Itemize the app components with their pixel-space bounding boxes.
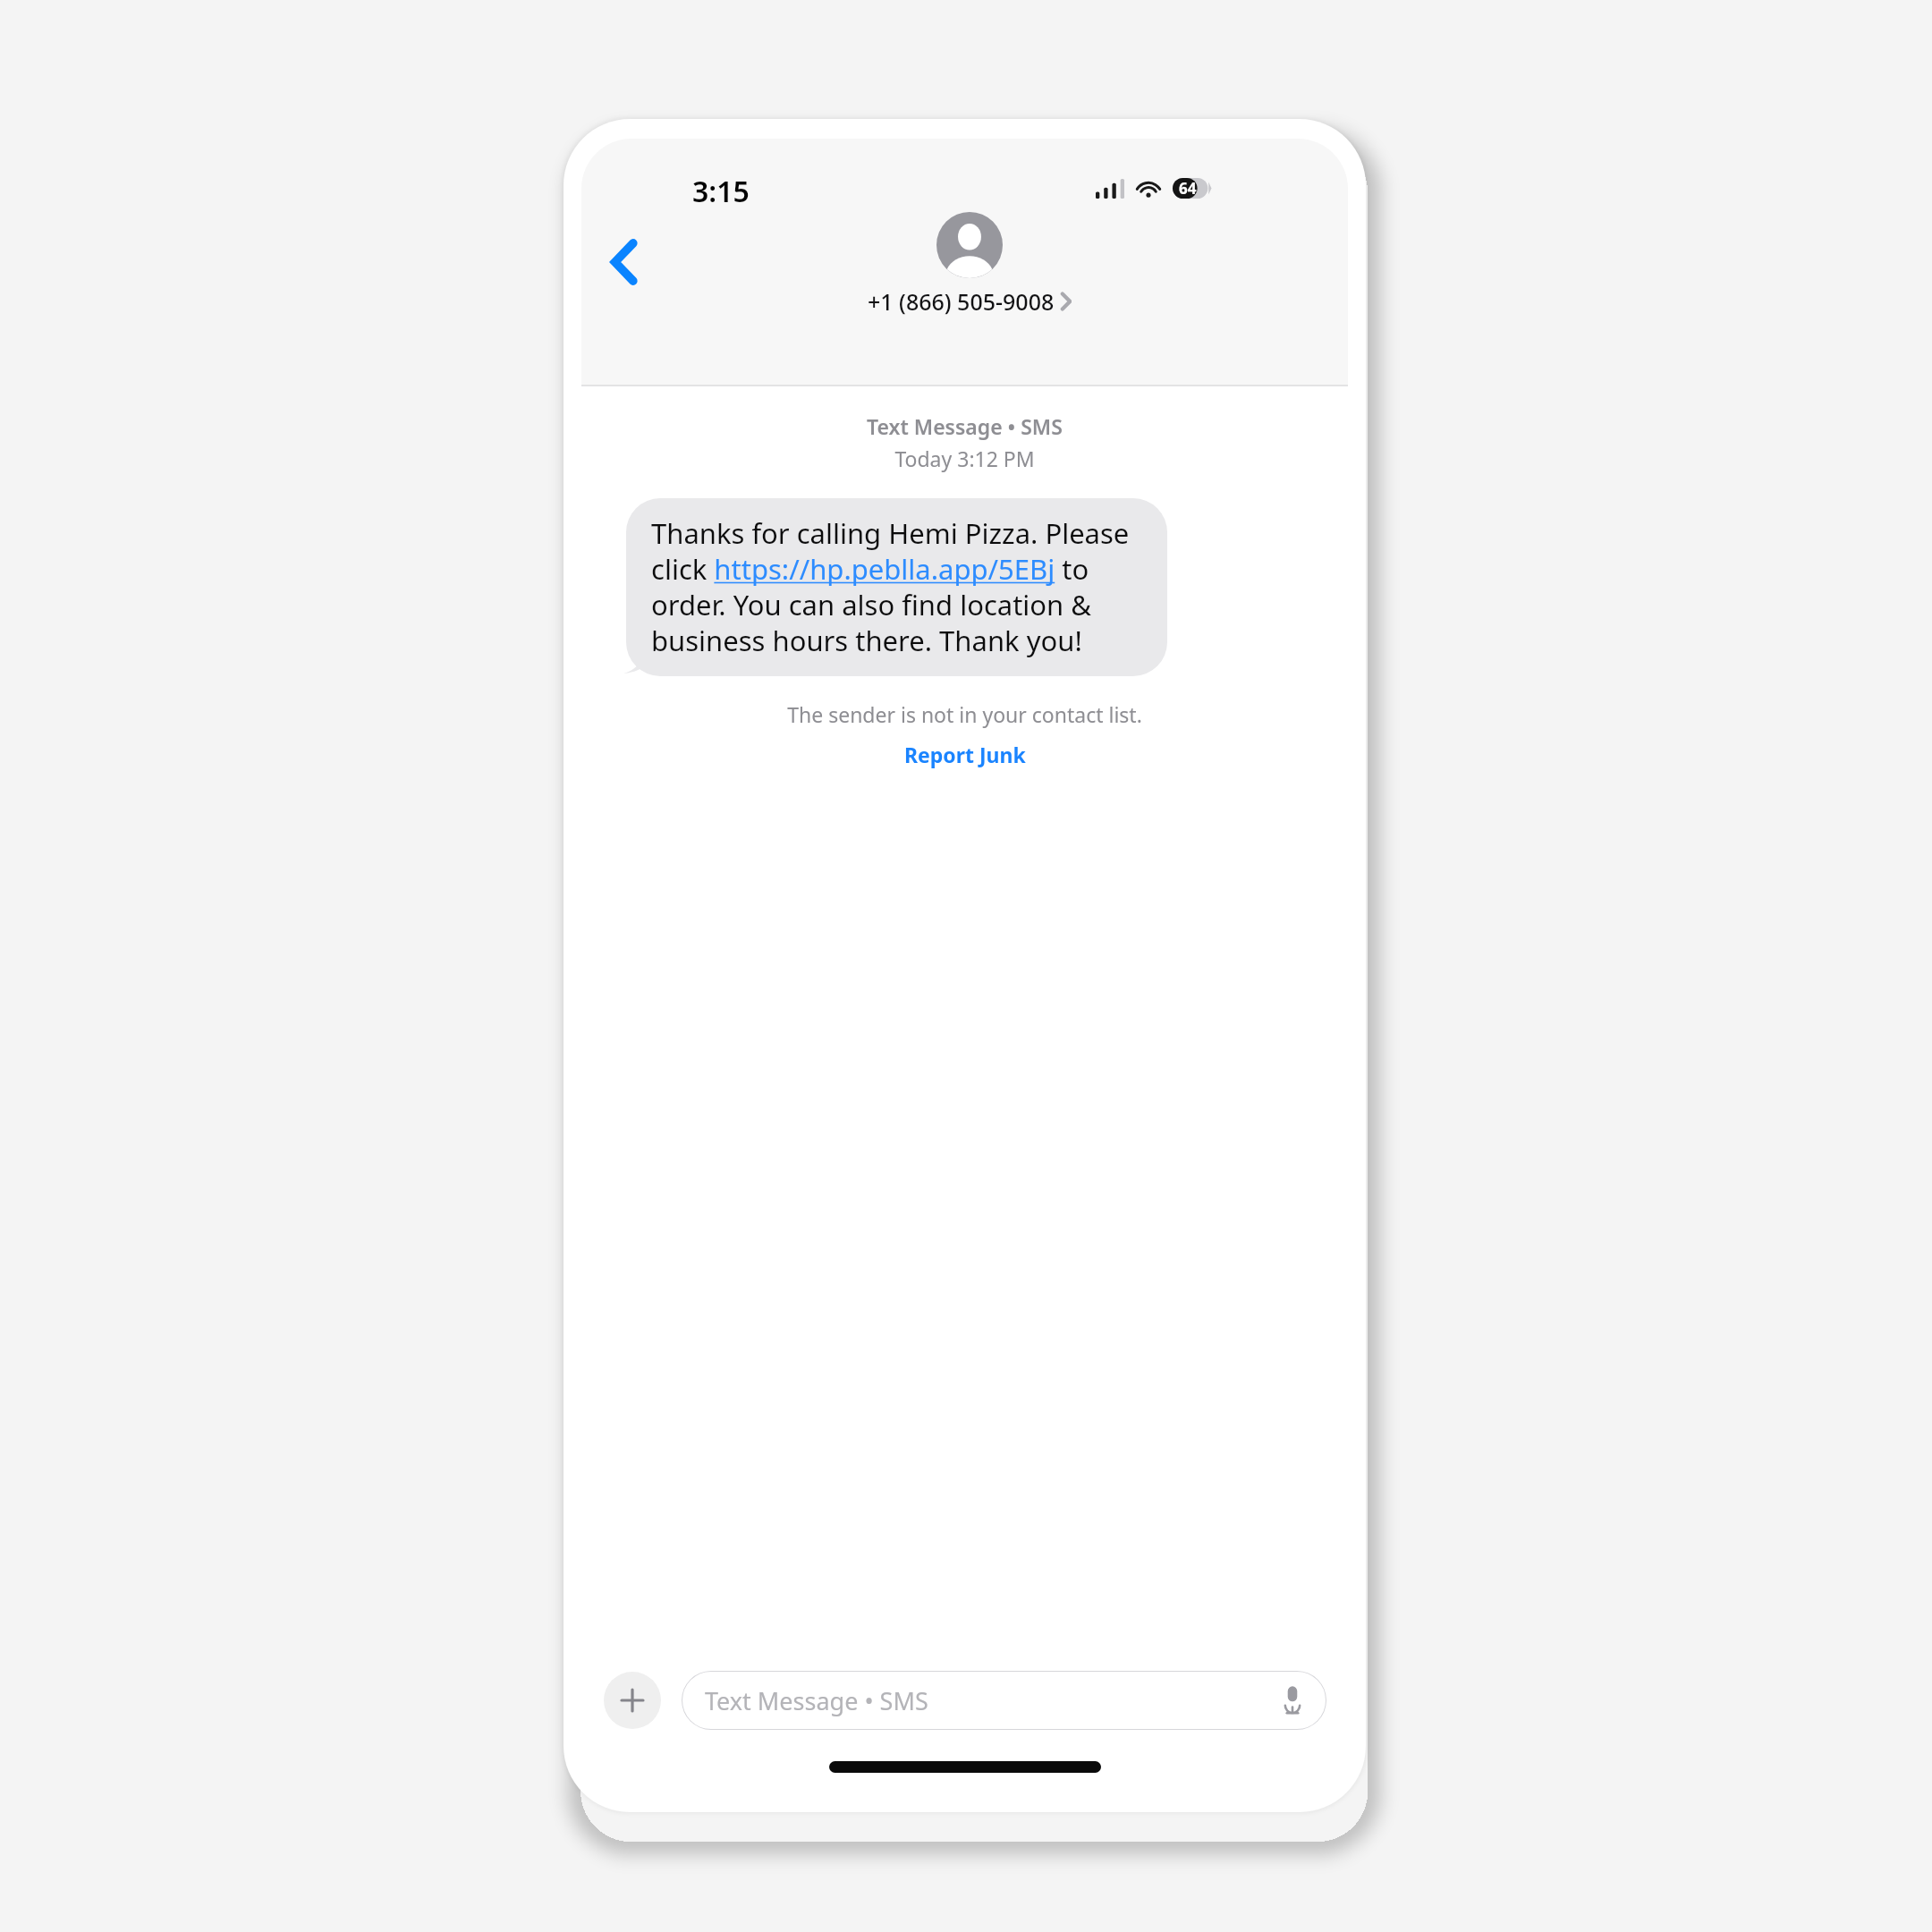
staticText: 3:15 [692,172,750,211]
button[interactable]: +1 (866) 505-9008 [868,212,1072,317]
button[interactable]: Add attachment [604,1672,661,1729]
button[interactable]: Dictate [1273,1681,1312,1720]
button[interactable]: Text Message • SMS [682,1671,1326,1730]
button[interactable]: Report Junk [895,738,1035,771]
button[interactable]: Back [590,228,658,296]
staticText: Report Junk [904,741,1026,768]
staticText: Text Message • SMS [581,412,1348,440]
staticText: Today 3:12 PM [581,445,1348,472]
staticText: Thanks for calling Hemi Pizza. Please cl… [651,514,1144,659]
staticText: 64 [1179,178,1197,199]
staticText: The sender is not in your contact list. [581,700,1348,728]
staticText: Text Message • SMS [705,1684,928,1717]
button[interactable]: Thanks for calling Hemi Pizza. Please cl… [626,498,1167,676]
staticText: +1 (866) 505-9008 [868,286,1055,317]
